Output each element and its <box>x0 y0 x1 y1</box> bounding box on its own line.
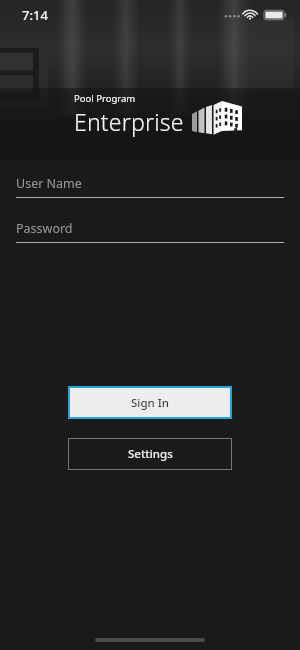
button[interactable]: Sign In <box>68 386 232 419</box>
staticText: Settings <box>128 446 173 462</box>
button[interactable]: Password <box>16 220 284 243</box>
staticText: Pool Program <box>74 92 136 105</box>
staticText: Enterprise <box>74 106 184 137</box>
staticText: 7:14 <box>22 6 48 24</box>
staticText: Password <box>16 220 73 237</box>
button[interactable]: User Name <box>16 175 284 198</box>
other: Enterprise logo <box>192 101 242 135</box>
staticText: User Name <box>16 175 82 192</box>
button[interactable]: Settings <box>68 438 232 470</box>
staticText: Sign In <box>131 395 170 411</box>
